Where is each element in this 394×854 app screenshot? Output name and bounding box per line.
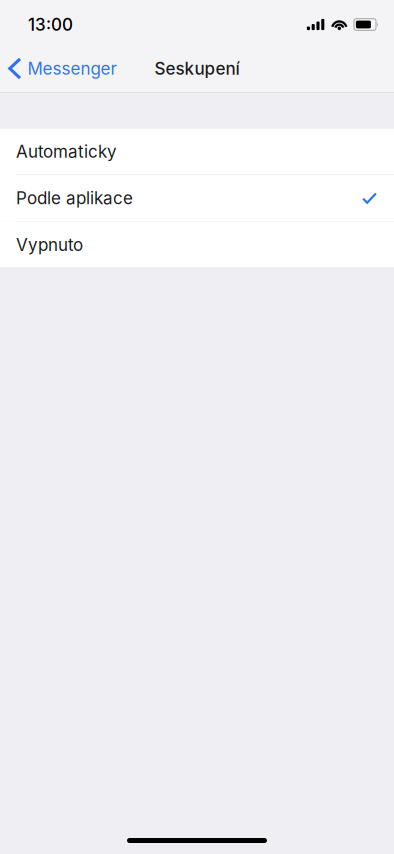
staticText: Seskupení [154,58,239,79]
button[interactable]: Vypnuto [0,222,394,268]
button[interactable]: Messenger [0,44,124,93]
button[interactable]: Podle aplikace [0,175,394,222]
staticText: Podle aplikace [16,188,133,208]
staticText: Automaticky [16,141,117,162]
staticText: 13:00 [28,14,73,35]
staticText: Vypnuto [16,234,83,255]
button[interactable]: Automaticky [0,128,394,175]
staticText: Messenger [27,58,116,79]
